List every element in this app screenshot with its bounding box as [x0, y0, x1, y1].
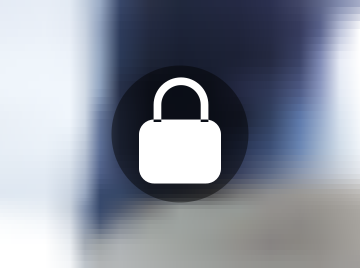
button[interactable]: Locked: [0, 0, 360, 268]
